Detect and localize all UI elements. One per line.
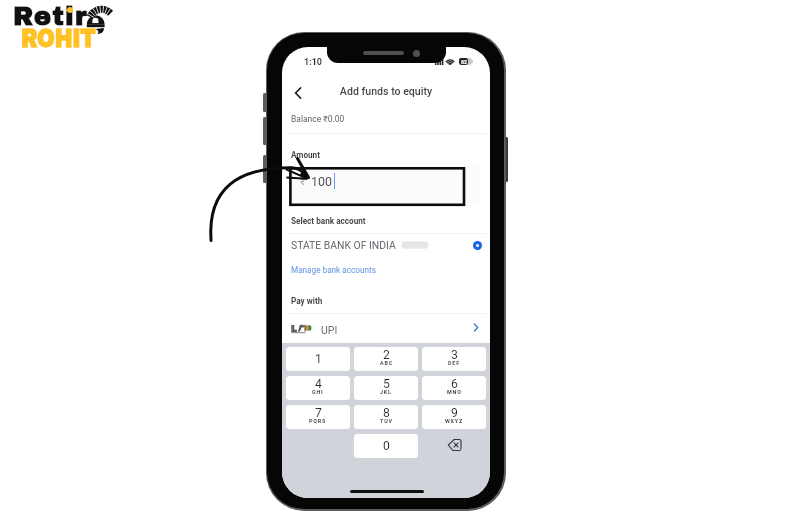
staticText: ₹	[300, 175, 306, 188]
button[interactable]: Backspace	[422, 434, 486, 458]
staticText: ABC	[380, 360, 393, 366]
staticText: Add funds to equity	[282, 85, 490, 97]
button[interactable]: Manage bank accounts	[291, 265, 376, 275]
button[interactable]: 3	[422, 347, 486, 371]
staticText: 0	[383, 439, 390, 453]
staticText: 9	[451, 406, 458, 420]
staticText: 8	[383, 406, 390, 420]
staticText: 7	[315, 406, 322, 420]
button[interactable]: UPI	[282, 315, 490, 341]
staticText: Retir	[13, 2, 88, 30]
button[interactable]: ₹	[289, 166, 481, 206]
button[interactable]: Back	[285, 80, 311, 106]
staticText: DEF	[448, 360, 460, 366]
button[interactable]: 0	[354, 434, 418, 458]
button[interactable]: 9	[422, 405, 486, 429]
button[interactable]: 7	[286, 405, 350, 429]
button[interactable]: 6	[422, 376, 486, 400]
staticText: STATE BANK OF INDIA	[291, 239, 396, 251]
button[interactable]: 2	[354, 347, 418, 371]
staticText: PQRS	[309, 418, 327, 424]
staticText: 1:10	[304, 57, 323, 68]
button[interactable]: 8	[354, 405, 418, 429]
staticText: 100	[311, 174, 333, 189]
staticText: 2	[383, 348, 390, 362]
button[interactable]: STATE BANK OF INDIA	[282, 233, 490, 257]
staticText: WXYZ	[445, 418, 463, 424]
staticText: MNO	[447, 389, 462, 395]
staticText: TUV	[380, 418, 393, 424]
staticText: 62	[461, 59, 468, 65]
button[interactable]: 1	[286, 347, 350, 371]
staticText: 3	[451, 348, 458, 362]
button[interactable]: 5	[354, 376, 418, 400]
staticText: GHI	[312, 389, 324, 395]
staticText: 5	[383, 377, 390, 391]
staticText: Select bank account	[291, 216, 366, 226]
staticText: JKL	[380, 389, 392, 395]
staticText: Balance ₹0.00	[291, 114, 345, 124]
staticText: 1	[315, 352, 322, 366]
staticText: 4	[315, 377, 322, 391]
staticText: Pay with	[291, 296, 323, 306]
staticText: Amount	[291, 150, 320, 160]
button[interactable]: 4	[286, 376, 350, 400]
staticText: ROHIT	[21, 25, 96, 53]
staticText: UPI	[321, 324, 338, 336]
staticText: 6	[451, 377, 458, 391]
